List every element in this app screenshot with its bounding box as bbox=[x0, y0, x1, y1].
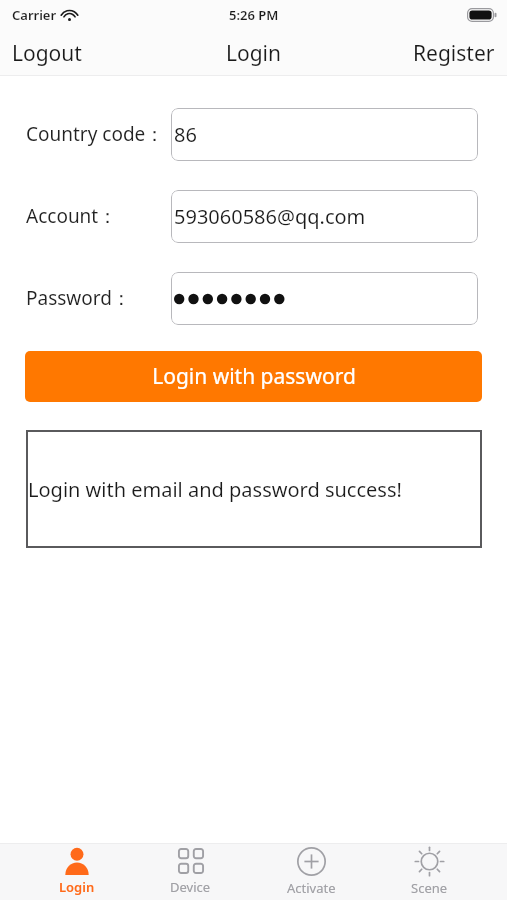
staticText: Scene bbox=[411, 879, 448, 896]
other: Scene bbox=[415, 847, 444, 876]
staticText: Login with email and password success! bbox=[28, 476, 402, 503]
button[interactable]: 86 bbox=[171, 108, 478, 161]
staticText: Country code： bbox=[26, 121, 165, 147]
staticText: Activate bbox=[287, 879, 336, 896]
staticText: Carrier bbox=[12, 6, 57, 24]
other: Activate bbox=[297, 847, 326, 876]
button[interactable]: Scene bbox=[395, 843, 464, 900]
button[interactable]: 593060586@qq.com bbox=[171, 190, 478, 243]
staticText: Register bbox=[413, 39, 495, 68]
staticText: Login bbox=[59, 878, 95, 896]
staticText: Logout bbox=[12, 39, 82, 68]
button[interactable]: Login bbox=[43, 843, 111, 900]
button[interactable]: Register bbox=[401, 33, 507, 74]
staticText: 593060586@qq.com bbox=[174, 203, 366, 230]
button[interactable]: Login with password bbox=[25, 351, 482, 402]
staticText: Login bbox=[226, 39, 282, 68]
staticText: 5:26 PM bbox=[229, 6, 279, 24]
button[interactable]: Logout bbox=[0, 33, 94, 74]
other: Login bbox=[62, 847, 92, 875]
staticText: Login with password bbox=[152, 362, 356, 391]
other: Device bbox=[177, 847, 205, 875]
button[interactable] bbox=[171, 272, 478, 325]
staticText: Account： bbox=[26, 203, 118, 229]
button[interactable]: Activate bbox=[271, 843, 352, 900]
button[interactable]: Device bbox=[154, 843, 227, 900]
staticText: 86 bbox=[174, 121, 197, 148]
staticText: Password： bbox=[26, 285, 131, 311]
staticText: Device bbox=[170, 878, 211, 896]
